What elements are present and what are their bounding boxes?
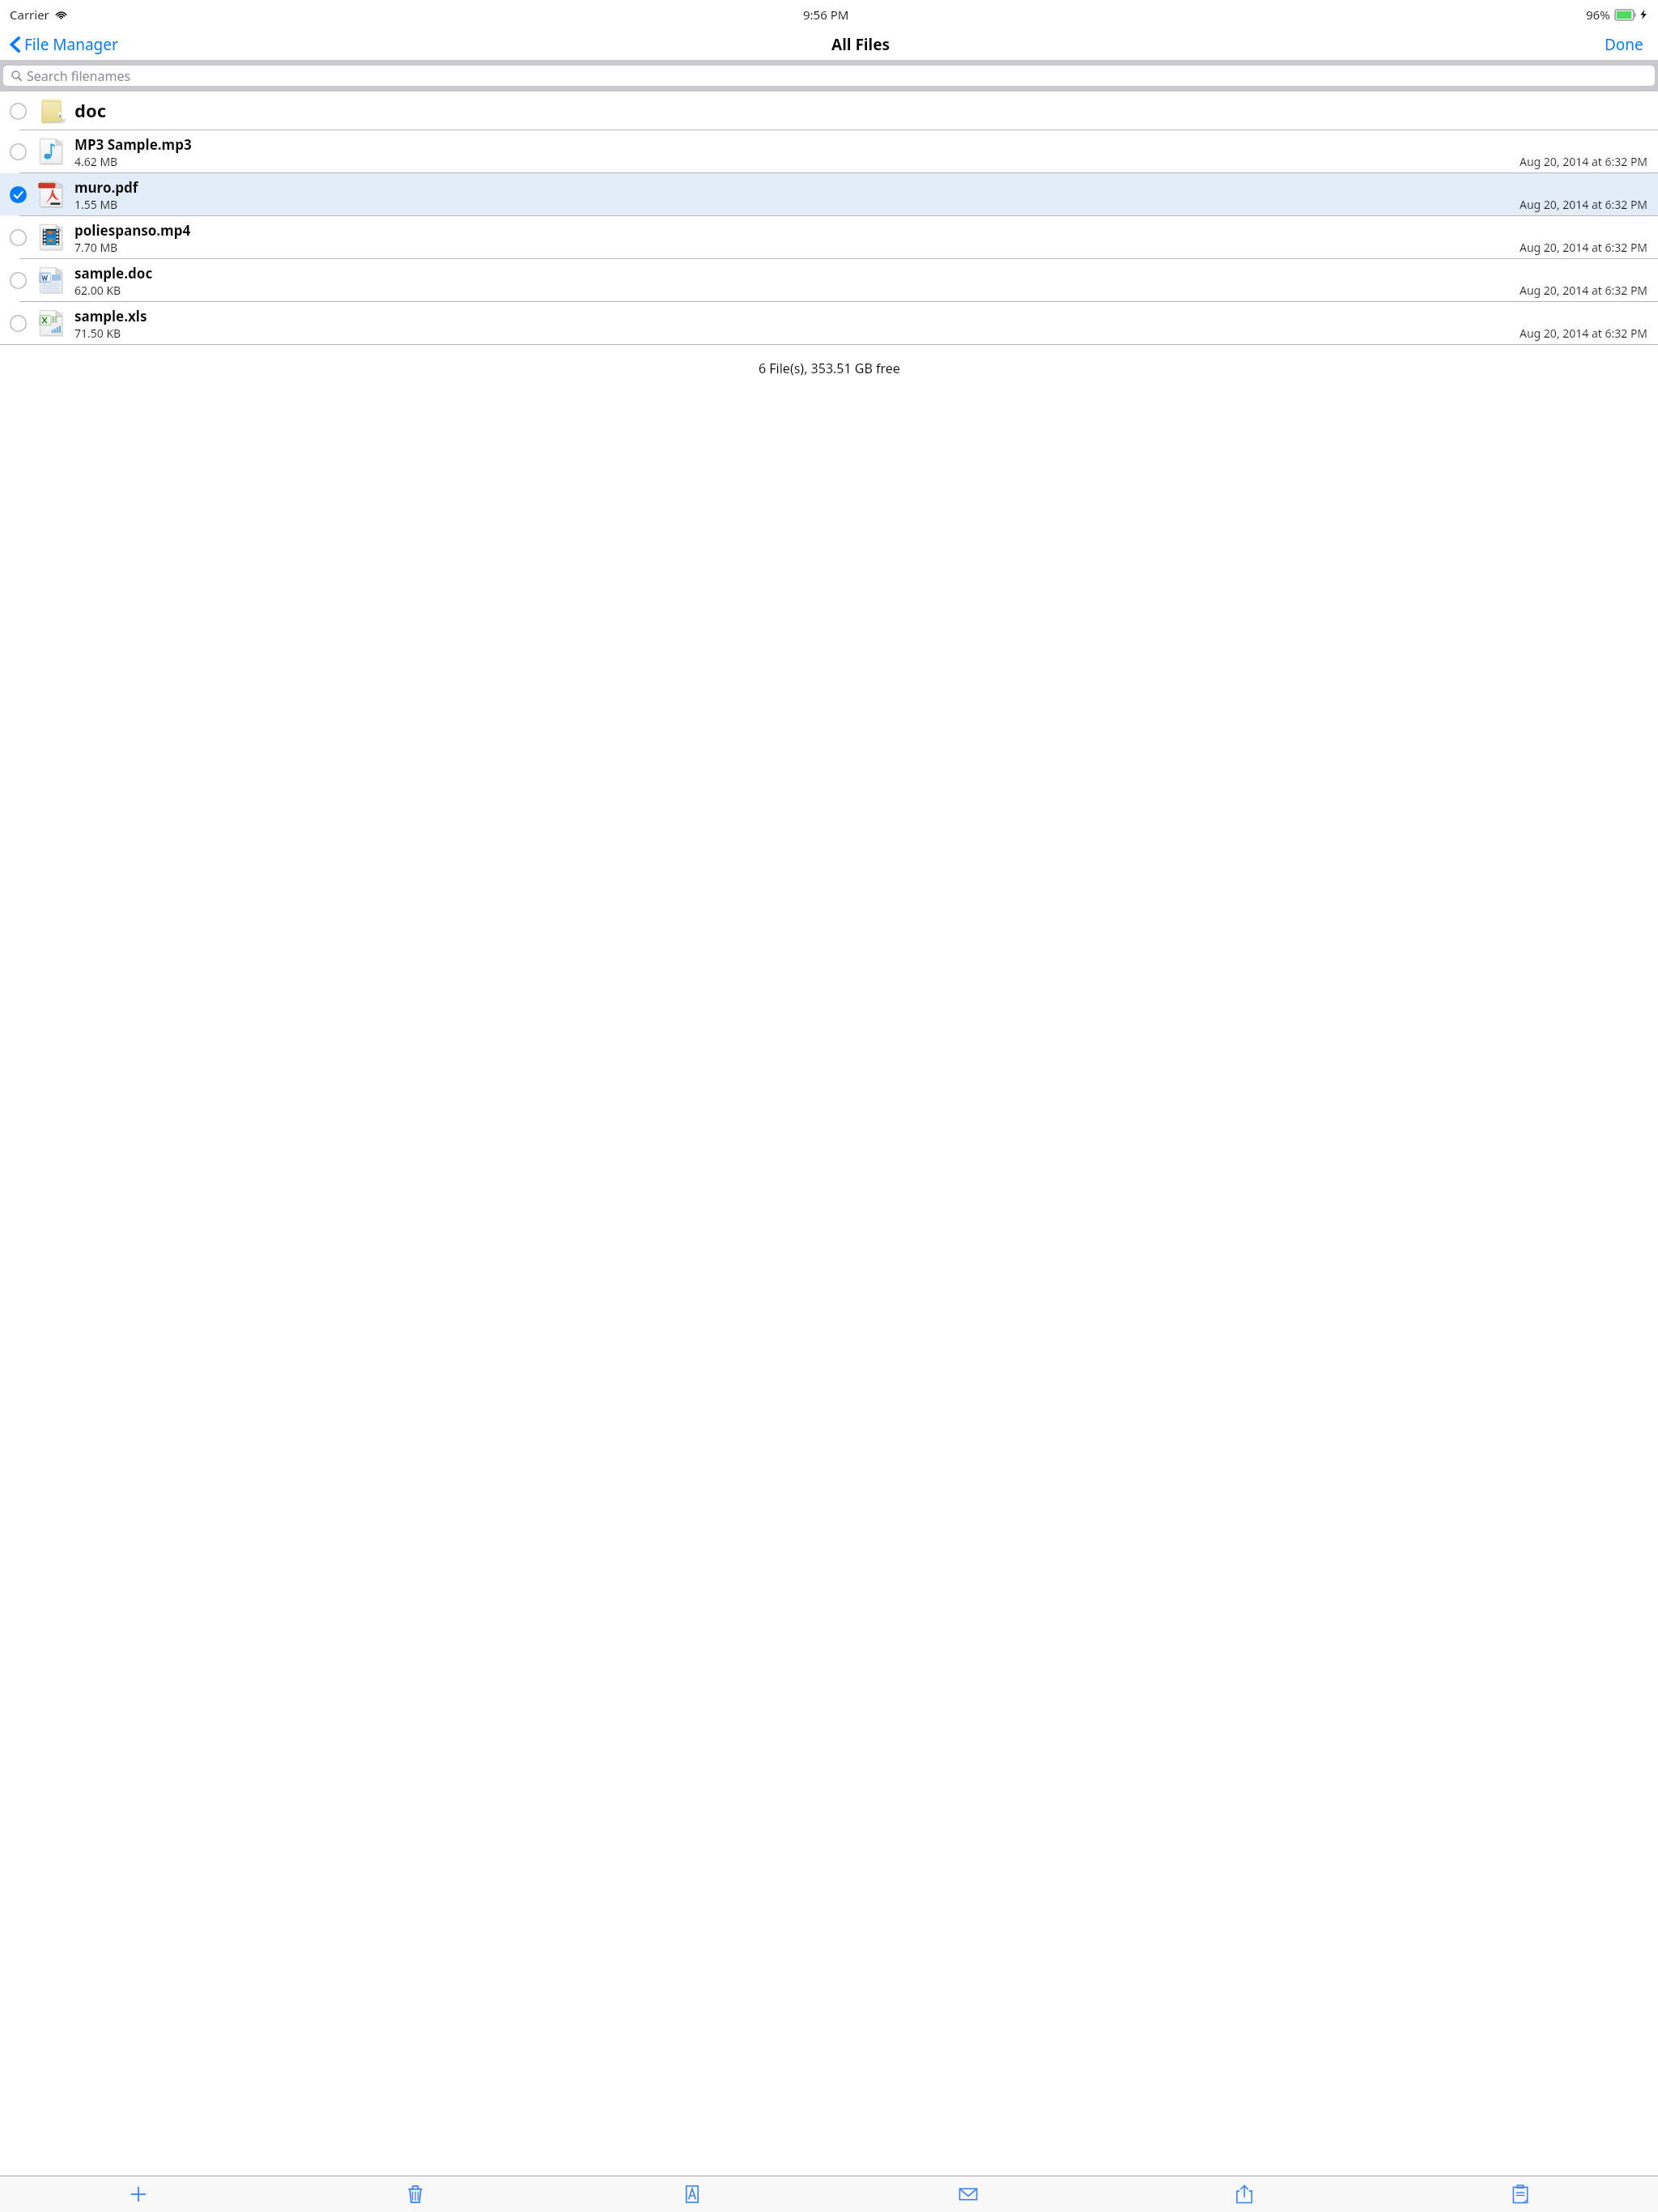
button[interactable]: sample.xls bbox=[0, 302, 1658, 344]
staticText: 6 File(s), 353.51 GB free bbox=[759, 359, 900, 377]
staticText: poliespanso.mp4 bbox=[74, 221, 191, 240]
staticText: Search filenames bbox=[27, 67, 131, 85]
staticText: 1.55 MB bbox=[74, 197, 118, 212]
button[interactable]: Add bbox=[0, 2176, 277, 2212]
staticText: All Files bbox=[831, 34, 891, 55]
staticText: Aug 20, 2014 at 6:32 PM bbox=[1520, 325, 1648, 341]
button[interactable]: File Manager bbox=[6, 31, 121, 58]
button[interactable]: Done bbox=[1601, 31, 1647, 58]
staticText: sample.doc bbox=[74, 264, 153, 283]
staticText: 4.62 MB bbox=[74, 154, 118, 169]
staticText: Aug 20, 2014 at 6:32 PM bbox=[1520, 283, 1648, 298]
button[interactable]: Delete bbox=[277, 2176, 554, 2212]
staticText: muro.pdf bbox=[74, 178, 138, 197]
staticText: Aug 20, 2014 at 6:32 PM bbox=[1520, 197, 1648, 212]
staticText: 96% bbox=[1586, 6, 1610, 23]
staticText: 71.50 KB bbox=[74, 325, 121, 341]
button[interactable]: Share bbox=[1106, 2176, 1382, 2212]
button[interactable]: poliespanso.mp4 bbox=[0, 216, 1658, 258]
staticText: sample.xls bbox=[74, 307, 147, 325]
button[interactable]: Paste bbox=[1382, 2176, 1658, 2212]
staticText: 9:56 PM bbox=[803, 6, 849, 23]
button[interactable]: MP3 Sample.mp3 bbox=[0, 130, 1658, 172]
button[interactable]: Search filenames bbox=[3, 66, 1655, 86]
button[interactable]: sample.doc bbox=[0, 259, 1658, 301]
staticText: MP3 Sample.mp3 bbox=[74, 135, 192, 154]
staticText: 62.00 KB bbox=[74, 283, 121, 298]
staticText: doc bbox=[74, 98, 107, 122]
button[interactable]: Rename bbox=[554, 2176, 830, 2212]
button[interactable]: muro.pdf bbox=[0, 173, 1658, 215]
staticText: Aug 20, 2014 at 6:32 PM bbox=[1520, 154, 1648, 169]
staticText: Done bbox=[1605, 34, 1643, 55]
staticText: Aug 20, 2014 at 6:32 PM bbox=[1520, 240, 1648, 255]
button[interactable]: Mail bbox=[830, 2176, 1106, 2212]
button[interactable]: doc bbox=[0, 91, 1658, 130]
staticText: File Manager bbox=[24, 34, 118, 55]
staticText: Carrier bbox=[10, 6, 49, 23]
staticText: 7.70 MB bbox=[74, 240, 118, 255]
